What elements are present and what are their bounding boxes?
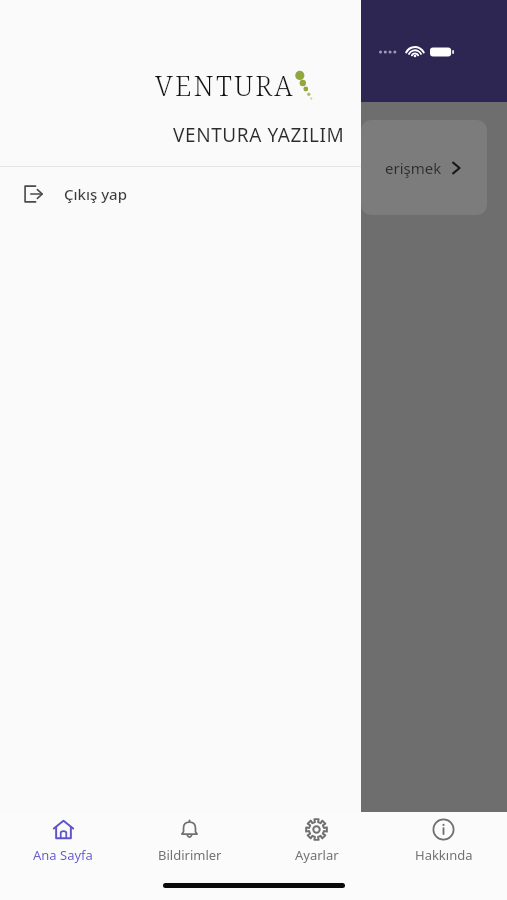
button[interactable]: Çıkış yap bbox=[0, 167, 361, 221]
button[interactable]: Ayarlar bbox=[253, 812, 380, 870]
staticText: Bildirimler bbox=[158, 846, 222, 864]
button[interactable]: Bildirimler bbox=[126, 812, 253, 870]
staticText: erişmek bbox=[385, 158, 442, 178]
staticText: Çıkış yap bbox=[64, 184, 128, 204]
staticText: Ana Sayfa bbox=[33, 846, 93, 864]
staticText: VENTURA bbox=[155, 67, 295, 104]
staticText: Ayarlar bbox=[295, 846, 339, 864]
button[interactable]: Ana Sayfa bbox=[0, 812, 126, 870]
button[interactable]: erişmek bbox=[361, 120, 487, 215]
staticText: Hakkında bbox=[415, 846, 473, 864]
staticText: VENTURA YAZILIM bbox=[173, 122, 345, 148]
button[interactable]: Hakkında bbox=[380, 812, 507, 870]
